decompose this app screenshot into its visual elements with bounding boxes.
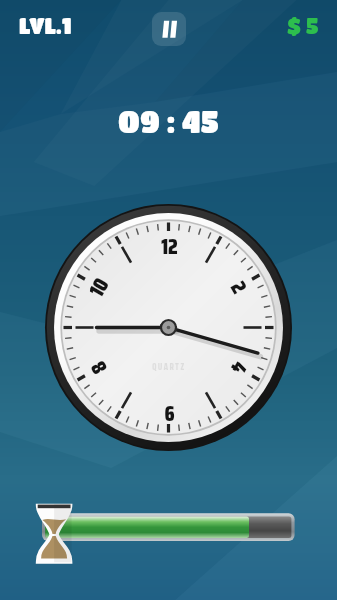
staticText: 2 [226, 275, 256, 297]
staticText: 09 : 45 [118, 104, 219, 138]
staticText: 8 [82, 357, 111, 381]
button[interactable]: Clock [45, 204, 292, 451]
staticText: 4 [227, 357, 256, 381]
staticText: 12 [161, 230, 178, 258]
button[interactable]: Pause [152, 12, 186, 46]
staticText: LVL.1 [19, 14, 72, 38]
staticText: $ 5 [287, 14, 319, 38]
staticText: QUARTZ [152, 360, 186, 374]
staticText: 10 [80, 272, 113, 300]
staticText: 6 [164, 397, 175, 425]
button[interactable]: $ 5 [287, 14, 319, 38]
button[interactable]: LVL.1 [19, 14, 72, 38]
